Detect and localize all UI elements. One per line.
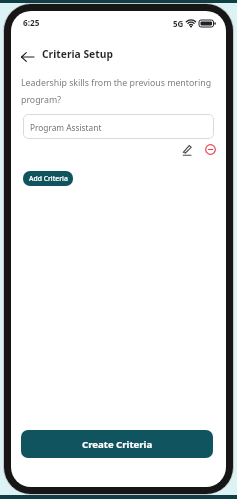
button[interactable]: Create Criteria	[21, 430, 213, 458]
button[interactable]: Criteria Setup	[21, 49, 113, 63]
button[interactable]	[178, 141, 196, 159]
staticText: 6:25	[23, 17, 40, 28]
staticText: 5G	[173, 18, 184, 29]
button[interactable]	[201, 140, 219, 158]
staticText: Criteria Setup	[42, 47, 113, 61]
staticText: Add Criteria	[29, 174, 68, 183]
staticText: Leadership skills from the previous ment…	[21, 77, 212, 105]
button[interactable]: Program Assistant	[23, 114, 214, 139]
button[interactable]: Add Criteria	[23, 171, 73, 186]
staticText: Program Assistant	[30, 122, 102, 133]
staticText: Create Criteria	[82, 438, 153, 451]
